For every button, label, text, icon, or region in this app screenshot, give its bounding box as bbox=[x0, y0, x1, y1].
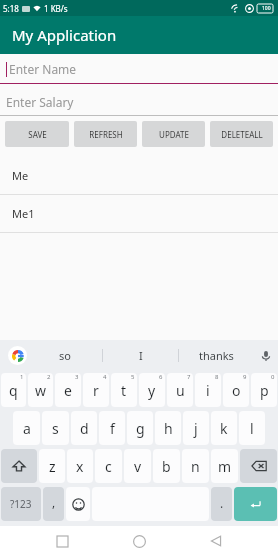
button[interactable]: b bbox=[153, 449, 180, 483]
staticText: w bbox=[35, 381, 47, 400]
staticText: h bbox=[164, 419, 173, 438]
button[interactable]: DELETEALL bbox=[210, 121, 273, 147]
staticText: 5 bbox=[131, 373, 135, 381]
staticText: 0 bbox=[271, 373, 275, 381]
button[interactable]: v bbox=[124, 449, 151, 483]
staticText: n bbox=[191, 457, 200, 476]
button[interactable]: g bbox=[127, 411, 153, 445]
button[interactable]: Shift bbox=[1, 449, 37, 483]
button[interactable]: I bbox=[103, 340, 178, 371]
staticText: p bbox=[260, 381, 269, 400]
button[interactable]: h bbox=[155, 411, 181, 445]
staticText: ?123 bbox=[10, 497, 32, 511]
staticText: d bbox=[80, 419, 89, 438]
staticText: t bbox=[121, 381, 127, 400]
staticText: o bbox=[232, 381, 241, 400]
button[interactable]: Emoji bbox=[66, 487, 90, 521]
button[interactable]: SAVE bbox=[5, 121, 69, 147]
staticText: u bbox=[176, 381, 185, 400]
button[interactable]: Comma bbox=[43, 487, 64, 521]
button[interactable]: l bbox=[239, 411, 265, 445]
button[interactable]: k bbox=[211, 411, 237, 445]
staticText: DELETEALL bbox=[221, 129, 263, 140]
button[interactable]: REFRESH bbox=[74, 121, 137, 147]
staticText: s bbox=[52, 419, 59, 438]
button[interactable]: e bbox=[55, 373, 81, 407]
staticText: Me1 bbox=[12, 206, 35, 221]
button[interactable]: Recents bbox=[47, 526, 77, 556]
staticText: f bbox=[110, 419, 115, 438]
staticText: v bbox=[134, 457, 142, 476]
staticText: Enter Salary bbox=[6, 94, 74, 110]
button[interactable]: Voice input bbox=[254, 340, 278, 371]
staticText: k bbox=[220, 419, 228, 438]
staticText: q bbox=[9, 381, 18, 400]
button[interactable]: Enter Name bbox=[0, 54, 278, 84]
staticText: c bbox=[105, 457, 112, 476]
button[interactable]: UPDATE bbox=[142, 121, 205, 147]
staticText: 8 bbox=[215, 373, 219, 381]
button[interactable]: c bbox=[95, 449, 122, 483]
staticText: x bbox=[76, 457, 84, 476]
button[interactable]: t bbox=[111, 373, 137, 407]
button[interactable]: d bbox=[71, 411, 97, 445]
staticText: 6 bbox=[159, 373, 163, 381]
button[interactable]: Backspace bbox=[240, 449, 277, 483]
button[interactable]: m bbox=[211, 449, 238, 483]
staticText: My Application bbox=[12, 25, 117, 45]
staticText: Enter Name bbox=[9, 61, 77, 77]
button[interactable]: Enter Salary bbox=[0, 88, 278, 116]
staticText: a bbox=[23, 419, 31, 438]
button[interactable]: o bbox=[223, 373, 249, 407]
staticText: . bbox=[220, 495, 224, 511]
button[interactable]: z bbox=[39, 449, 65, 483]
button[interactable]: i bbox=[195, 373, 221, 407]
staticText: l bbox=[250, 419, 254, 438]
button[interactable]: x bbox=[67, 449, 93, 483]
button[interactable]: Google bbox=[8, 346, 27, 365]
button[interactable]: q bbox=[1, 373, 26, 407]
button[interactable]: y bbox=[139, 373, 165, 407]
button[interactable]: Me bbox=[0, 157, 278, 195]
button[interactable]: ?123 bbox=[1, 487, 41, 521]
button[interactable]: s bbox=[42, 411, 69, 445]
button[interactable]: n bbox=[182, 449, 209, 483]
button[interactable]: Home bbox=[124, 526, 154, 556]
button[interactable]: Period bbox=[211, 487, 232, 521]
staticText: m bbox=[218, 457, 232, 476]
staticText: I bbox=[139, 348, 143, 363]
button[interactable]: f bbox=[99, 411, 125, 445]
staticText: 7 bbox=[187, 373, 191, 381]
button[interactable]: Me1 bbox=[0, 195, 278, 233]
staticText: 1 KB/s bbox=[44, 3, 68, 14]
staticText: SAVE bbox=[28, 129, 47, 140]
staticText: thanks bbox=[199, 348, 234, 363]
staticText: 2 bbox=[47, 373, 51, 381]
staticText: Me bbox=[12, 168, 29, 183]
staticText: r bbox=[93, 381, 99, 400]
button[interactable]: Enter bbox=[234, 487, 277, 521]
button[interactable]: so bbox=[27, 340, 102, 371]
button[interactable]: p bbox=[251, 373, 277, 407]
button[interactable]: j bbox=[183, 411, 209, 445]
staticText: i bbox=[206, 381, 210, 400]
staticText: 5:18 bbox=[3, 3, 19, 14]
staticText: UPDATE bbox=[159, 129, 189, 140]
button[interactable]: a bbox=[13, 411, 40, 445]
staticText: 4 bbox=[103, 373, 107, 381]
staticText: 9 bbox=[243, 373, 247, 381]
staticText: so bbox=[59, 348, 71, 363]
staticText: REFRESH bbox=[89, 129, 123, 140]
button[interactable]: Back bbox=[201, 526, 231, 556]
button[interactable]: u bbox=[167, 373, 193, 407]
button[interactable]: thanks bbox=[179, 340, 254, 371]
staticText: , bbox=[52, 494, 56, 510]
staticText: e bbox=[64, 381, 72, 400]
staticText: b bbox=[162, 457, 171, 476]
staticText: y bbox=[148, 381, 156, 400]
staticText: 100 bbox=[262, 5, 271, 12]
button[interactable]: r bbox=[83, 373, 109, 407]
staticText: z bbox=[49, 457, 56, 476]
button[interactable]: w bbox=[28, 373, 53, 407]
